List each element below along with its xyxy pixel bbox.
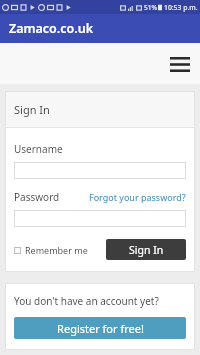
staticText: Forgot your password? [89,191,186,203]
button[interactable]: Forgot your password? [89,191,186,203]
staticText: Sign In [129,243,164,257]
staticText: Remember me [25,244,88,256]
staticText: Zamaco.co.uk [9,20,94,37]
button[interactable]: Open navigation menu [167,51,193,77]
staticText: Username [14,142,63,156]
staticText: You don't have an account yet? [14,294,159,308]
button[interactable]: Register for free! [14,317,186,339]
button[interactable] [14,210,186,227]
button[interactable]: Sign In [106,239,186,260]
button[interactable] [14,162,186,179]
staticText: 10:53 p.m. [164,3,198,12]
staticText: Sign In [14,102,50,117]
staticText: Password [14,190,60,204]
staticText: 51% [144,3,157,12]
staticText: Register for free! [57,321,144,336]
button[interactable]: Remember me [14,244,88,256]
